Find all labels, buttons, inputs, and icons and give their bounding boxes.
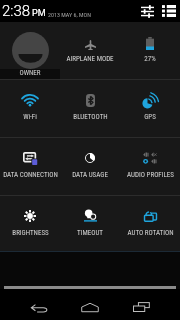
button[interactable]: Quick settings	[140, 4, 154, 18]
staticText: OWNER	[19, 69, 41, 77]
staticText: DATA USAGE	[72, 171, 108, 179]
staticText: DATA CONNECTION	[3, 171, 58, 179]
button[interactable]: DATA CONNECTION	[0, 138, 60, 195]
staticText: 27%	[144, 55, 156, 63]
staticText: TIMEOUT	[77, 229, 103, 237]
staticText: 2013 MAY 6, MON	[48, 11, 91, 18]
staticText: GPS	[144, 113, 156, 121]
staticText: PM	[32, 8, 46, 19]
button[interactable]: BLUETOOTH	[60, 80, 120, 137]
button[interactable]: Recent apps	[124, 294, 158, 320]
staticText: AUTO ROTATION	[127, 229, 174, 237]
button[interactable]: OWNER	[0, 22, 60, 79]
button[interactable]: AUTO ROTATION	[120, 196, 180, 251]
staticText: 2:38	[2, 2, 31, 20]
button[interactable]: BRIGHTNESS	[0, 196, 60, 251]
staticText: AUDIO PROFILES	[127, 171, 174, 179]
staticText: Wi-Fi	[23, 113, 37, 121]
button[interactable]: 27%	[120, 22, 180, 79]
button[interactable]: AIRPLANE MODE	[60, 22, 120, 79]
button[interactable]: Home	[73, 294, 107, 320]
button[interactable]: TIMEOUT	[60, 196, 120, 251]
button[interactable]: DATA USAGE	[60, 138, 120, 195]
button[interactable]: Back	[22, 294, 56, 320]
staticText: BLUETOOTH	[73, 113, 108, 121]
button[interactable]: Wi-Fi	[0, 80, 60, 137]
staticText: AIRPLANE MODE	[66, 55, 114, 63]
button[interactable]: AUDIO PROFILES	[120, 138, 180, 195]
button[interactable]: Notifications	[162, 4, 176, 18]
staticText: BRIGHTNESS	[12, 229, 49, 237]
button[interactable]: GPS	[120, 80, 180, 137]
